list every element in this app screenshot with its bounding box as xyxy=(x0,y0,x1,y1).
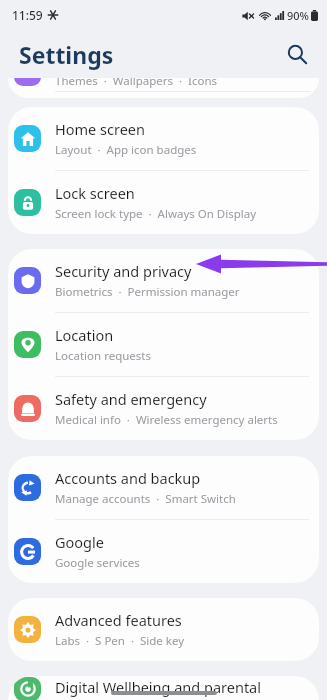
staticText: Screen lock type · Always On Display xyxy=(55,206,257,222)
button[interactable]: Location xyxy=(8,313,319,376)
staticText: Location xyxy=(55,325,114,345)
staticText: 90% xyxy=(287,8,309,23)
staticText: Layout · App icon badges xyxy=(55,142,197,158)
staticText: Security and privacy xyxy=(55,261,192,281)
staticText: Location requests xyxy=(55,348,151,364)
button[interactable]: Themes · Wallpapers · Icons xyxy=(8,78,319,98)
staticText: Google xyxy=(55,532,104,552)
button[interactable]: Google xyxy=(8,520,319,583)
button[interactable]: Digital Wellbeing and parental controls xyxy=(8,676,319,700)
staticText: Google services xyxy=(55,555,140,571)
button[interactable]: Safety and emergency xyxy=(8,377,319,440)
staticText: Settings xyxy=(19,39,114,70)
staticText: 11:59 xyxy=(12,7,43,23)
button[interactable]: Search xyxy=(277,34,317,74)
staticText: Labs · S Pen · Side key xyxy=(55,633,185,649)
staticText: Accounts and backup xyxy=(55,468,201,488)
staticText: Safety and emergency xyxy=(55,389,207,409)
staticText: Lock screen xyxy=(55,183,135,203)
staticText: Themes · Wallpapers · Icons xyxy=(55,78,217,89)
staticText: Medical info · Wireless emergency alerts xyxy=(55,412,278,428)
staticText: Digital Wellbeing and parental controls xyxy=(55,677,309,697)
staticText: Home screen xyxy=(55,119,145,139)
button[interactable]: Security and privacy xyxy=(8,249,319,312)
button[interactable]: Advanced features xyxy=(8,598,319,661)
button[interactable]: Accounts and backup xyxy=(8,456,319,519)
staticText: Advanced features xyxy=(55,610,182,630)
staticText: Manage accounts · Smart Switch xyxy=(55,491,236,507)
staticText: Biometrics · Permission manager xyxy=(55,284,240,300)
button[interactable]: Lock screen xyxy=(8,171,319,234)
button[interactable]: Home screen xyxy=(8,107,319,170)
